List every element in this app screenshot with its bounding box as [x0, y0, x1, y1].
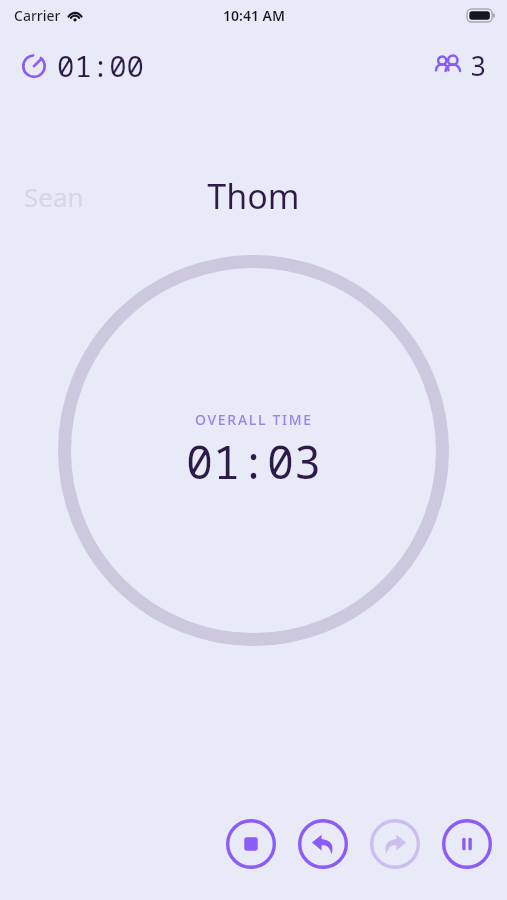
staticText: 3 — [470, 47, 487, 84]
button[interactable]: Participants — [428, 45, 491, 86]
staticText: Thom — [207, 173, 300, 219]
button[interactable]: Next — [369, 818, 421, 870]
staticText: 01:00 — [57, 46, 145, 84]
button[interactable]: Stop — [225, 818, 277, 870]
staticText: 01:03 — [186, 431, 322, 492]
staticText: Carrier — [14, 6, 61, 25]
button[interactable]: Pause — [441, 818, 493, 870]
button[interactable]: Previous — [297, 818, 349, 870]
staticText: 10:41 AM — [223, 6, 285, 25]
staticText: OVERALL TIME — [195, 410, 313, 429]
button[interactable]: Sean — [24, 179, 84, 214]
button[interactable]: 01:00 — [16, 44, 149, 86]
